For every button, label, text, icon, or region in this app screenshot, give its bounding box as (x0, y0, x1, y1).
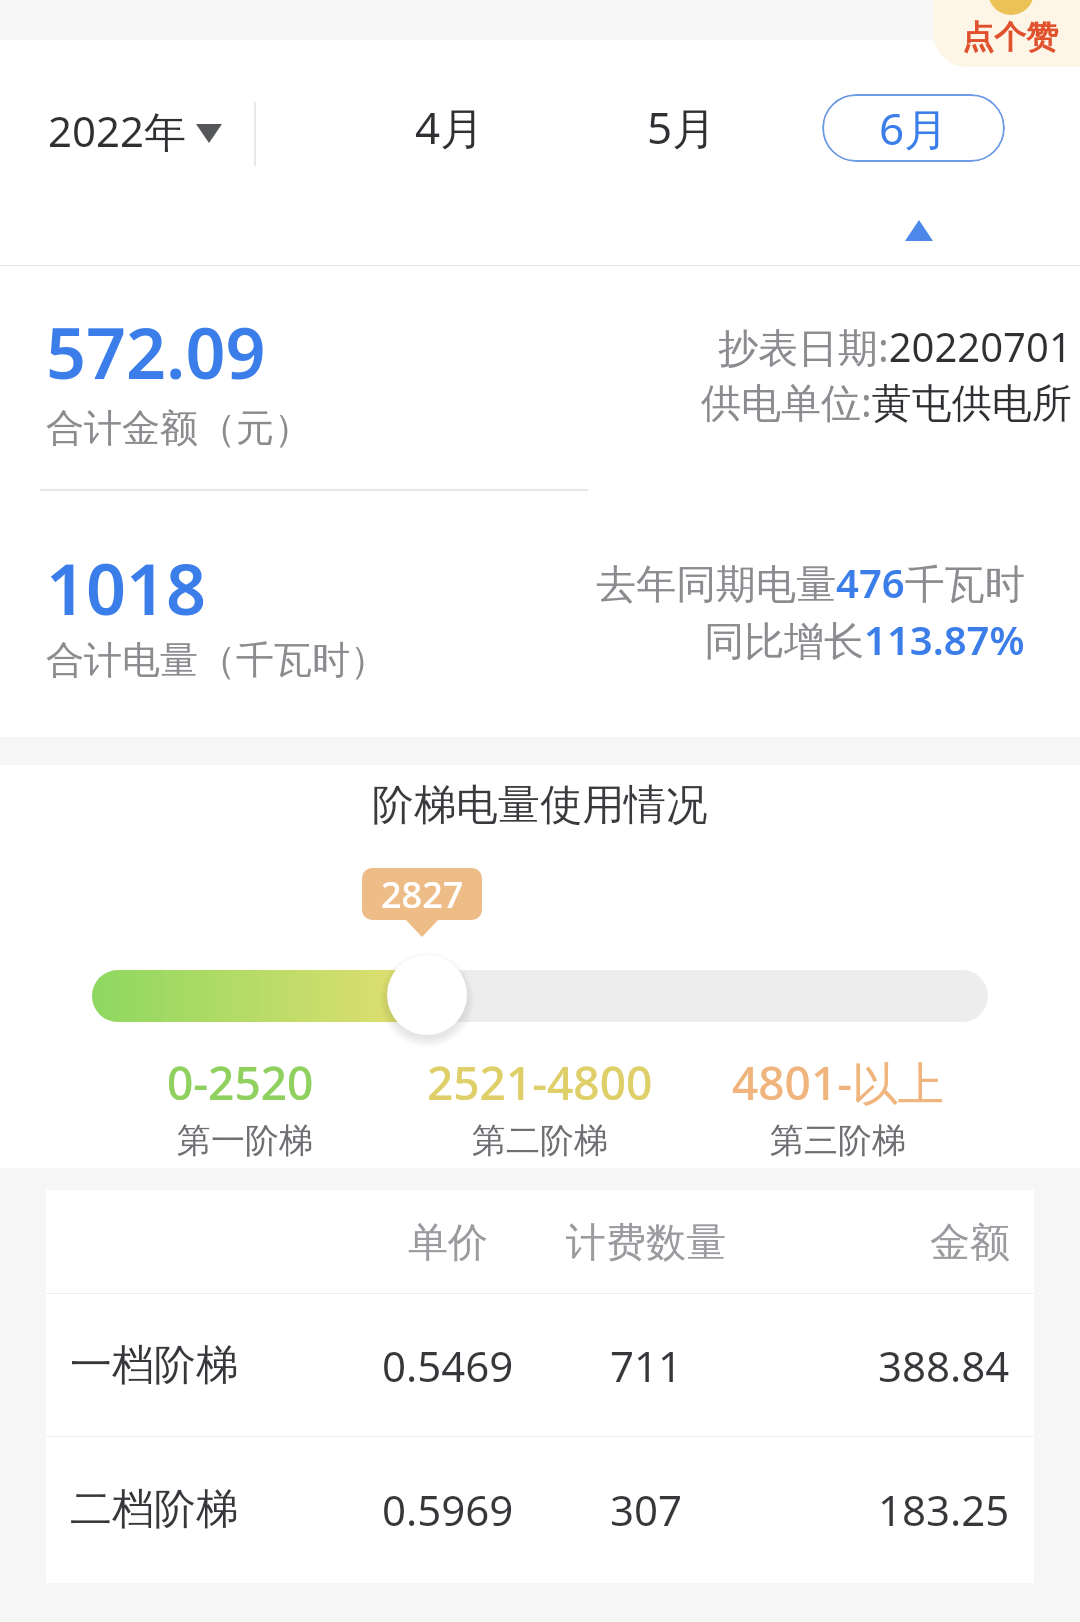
staticText: 第一阶梯 (177, 1119, 313, 1162)
staticText: 0-2520 (167, 1051, 314, 1114)
staticText: 0.5969 (382, 1481, 514, 1538)
staticText: 307 (610, 1481, 683, 1538)
staticText: 572.09 (46, 304, 266, 399)
staticText: 183.25 (878, 1481, 1010, 1538)
staticText: 计费数量 (566, 1217, 726, 1267)
staticText: 点个赞 (962, 17, 1058, 57)
staticText: 4月 (415, 97, 485, 157)
staticText: 阶梯电量使用情况 (372, 779, 708, 832)
staticText: 1018 (46, 540, 207, 635)
staticText: 一档阶梯 (70, 1339, 238, 1392)
staticText: 第二阶梯 (472, 1119, 608, 1162)
staticText: 2521-4800 (427, 1051, 653, 1114)
staticText: 抄表日期:20220701 (718, 319, 1072, 374)
staticText: 4801-以上 (732, 1051, 945, 1114)
staticText: 5月 (647, 97, 717, 157)
staticText: 2827 (381, 870, 464, 919)
staticText: 合计金额（元） (46, 404, 312, 452)
staticText: 第三阶梯 (770, 1119, 906, 1162)
staticText: 金额 (930, 1217, 1010, 1267)
staticText: 二档阶梯 (70, 1483, 238, 1536)
staticText: 合计电量（千瓦时） (46, 636, 388, 684)
staticText: 单价 (408, 1217, 488, 1267)
staticText: 6月 (879, 98, 949, 158)
staticText: 0.5469 (382, 1337, 514, 1394)
staticText: 同比增长113.87% (704, 612, 1025, 667)
staticText: 2022年 (48, 102, 187, 159)
staticText: 388.84 (878, 1337, 1010, 1394)
staticText: 去年同期电量476千瓦时 (596, 555, 1025, 610)
staticText: 供电单位:黄屯供电所 (701, 374, 1072, 429)
staticText: 711 (610, 1337, 683, 1394)
